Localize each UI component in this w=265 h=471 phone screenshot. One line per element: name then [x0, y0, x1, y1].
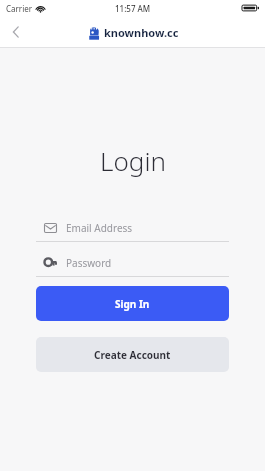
button[interactable]: knownhow.cc	[87, 25, 179, 40]
button[interactable]: Back	[0, 16, 32, 48]
staticText: Password	[66, 256, 112, 270]
staticText: knownhow.cc	[104, 25, 179, 40]
button[interactable]: Sign In	[36, 286, 229, 321]
staticText: Sign In	[115, 297, 150, 311]
staticText: Carrier	[6, 3, 33, 14]
button[interactable]: Create Account	[36, 337, 229, 372]
button[interactable]: Password	[36, 249, 229, 277]
staticText: Create Account	[94, 348, 171, 362]
staticText: Email Address	[66, 221, 133, 235]
staticText: Login	[100, 143, 166, 178]
staticText: 11:57 AM	[115, 3, 151, 14]
button[interactable]: Email Address	[36, 214, 229, 242]
